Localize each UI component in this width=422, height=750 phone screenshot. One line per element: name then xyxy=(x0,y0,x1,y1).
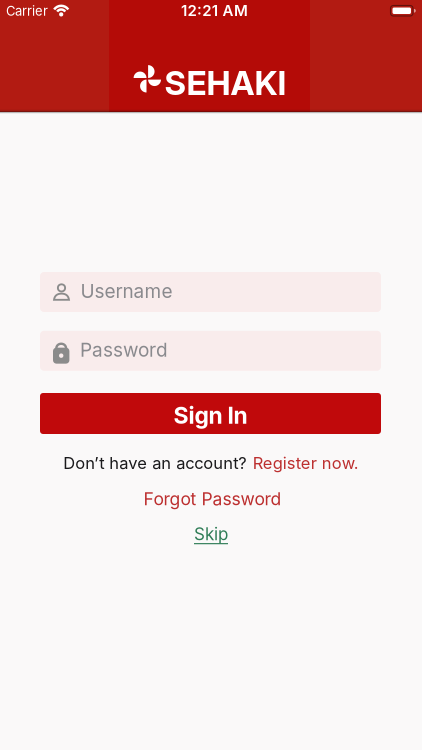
staticText: Username xyxy=(80,279,172,302)
staticText: SEHAKI xyxy=(164,63,286,103)
staticText: Password xyxy=(80,338,168,361)
staticText: 12:21 AM xyxy=(181,1,248,19)
button[interactable]: Register now. xyxy=(253,453,359,473)
button[interactable]: Username xyxy=(40,272,381,312)
button[interactable]: Skip xyxy=(194,524,228,544)
button[interactable]: Sign In xyxy=(40,393,381,434)
button[interactable]: Forgot Password xyxy=(143,488,281,510)
staticText: Register now. xyxy=(253,453,359,473)
staticText: Forgot Password xyxy=(143,488,281,510)
button[interactable]: Password xyxy=(40,331,381,371)
staticText: Skip xyxy=(194,524,228,544)
staticText: Carrier xyxy=(6,3,48,19)
staticText: Don’t have an account? xyxy=(63,453,246,473)
staticText: Sign In xyxy=(173,402,247,429)
